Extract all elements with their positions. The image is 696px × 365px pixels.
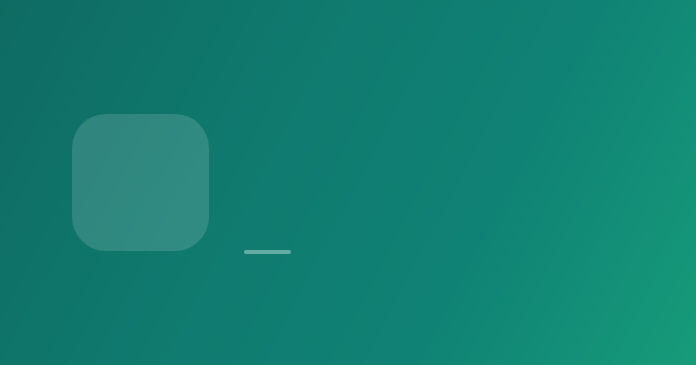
- button[interactable]: Loading content: [72, 114, 209, 251]
